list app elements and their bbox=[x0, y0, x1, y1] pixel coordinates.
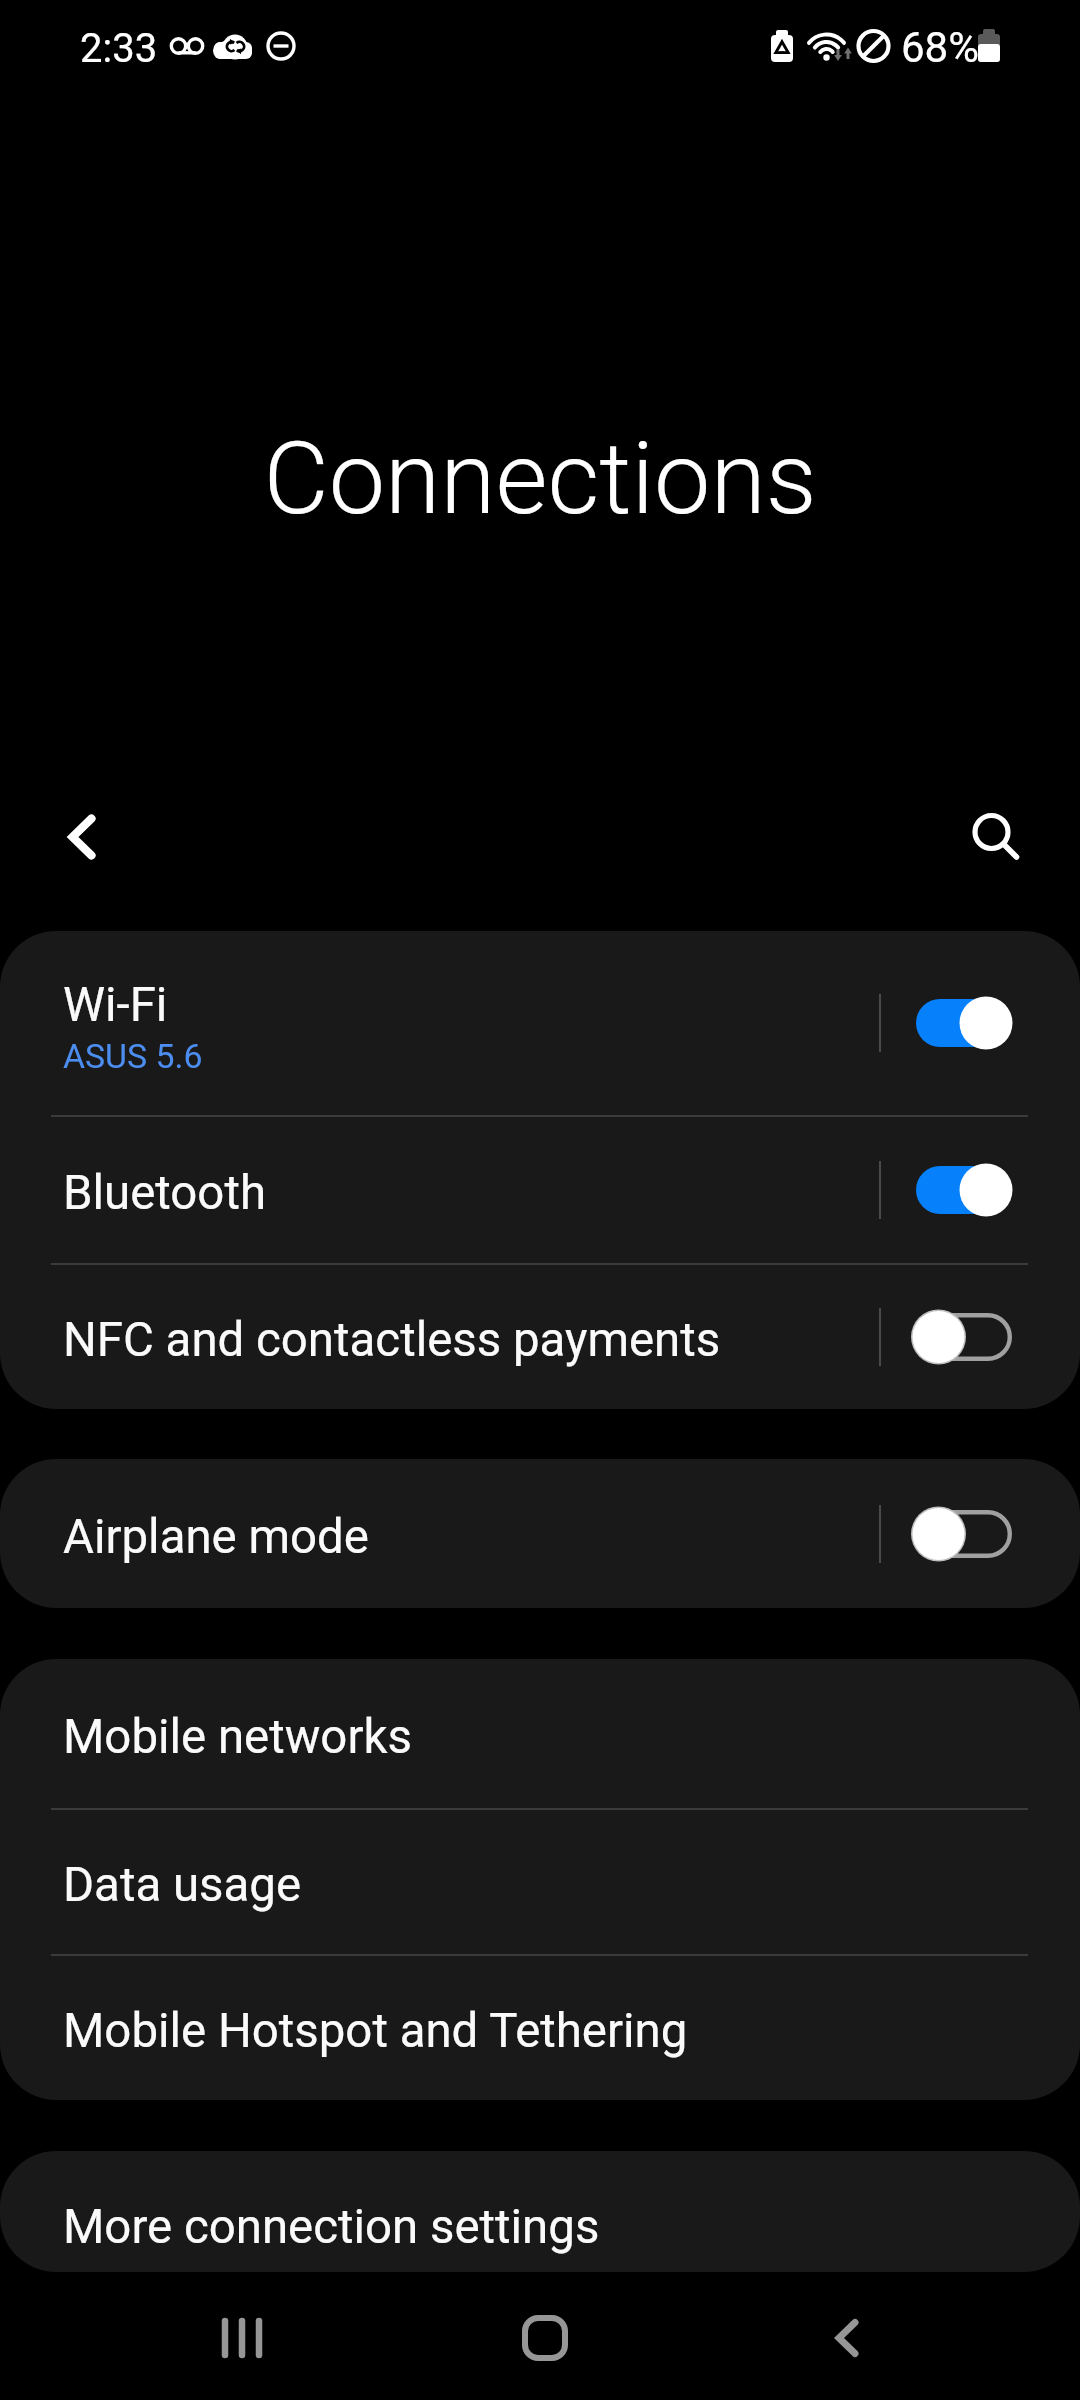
button[interactable]: Switch on bbox=[908, 931, 1020, 1115]
button[interactable]: Mobile Hotspot and Tethering bbox=[0, 1956, 1080, 2100]
staticText: Data usage bbox=[63, 1857, 302, 1913]
button[interactable]: Wi-Fi bbox=[0, 931, 1080, 1115]
staticText: Wi-Fi bbox=[63, 977, 168, 1033]
staticText: Mobile Hotspot and Tethering bbox=[63, 2003, 688, 2059]
button[interactable]: Navigate up bbox=[35, 790, 129, 884]
staticText: 2:33 bbox=[80, 25, 158, 72]
button[interactable]: Airplane mode bbox=[0, 1459, 1080, 1608]
button[interactable]: Mobile networks bbox=[0, 1659, 1080, 1808]
staticText: Connections bbox=[0, 420, 1080, 538]
button[interactable]: Search bbox=[946, 790, 1040, 884]
button[interactable]: More connection settings bbox=[0, 2151, 1080, 2272]
staticText: Mobile networks bbox=[63, 1709, 412, 1765]
staticText: More connection settings bbox=[63, 2199, 600, 2255]
staticText: ASUS 5.6 bbox=[63, 1037, 203, 1077]
button[interactable]: Back bbox=[787, 2278, 907, 2398]
button[interactable]: Bluetooth bbox=[0, 1117, 1080, 1263]
staticText: Bluetooth bbox=[63, 1165, 267, 1221]
button[interactable]: Switch off bbox=[908, 1459, 1020, 1608]
button[interactable]: Switch off bbox=[908, 1265, 1020, 1409]
button[interactable]: Recent apps bbox=[182, 2278, 302, 2398]
button[interactable]: Data usage bbox=[0, 1810, 1080, 1954]
staticText: NFC and contactless payments bbox=[63, 1312, 721, 1368]
staticText: Airplane mode bbox=[63, 1509, 369, 1565]
button[interactable]: Home bbox=[485, 2278, 605, 2398]
button[interactable]: NFC and contactless payments bbox=[0, 1265, 1080, 1409]
button[interactable]: Switch on bbox=[908, 1117, 1020, 1263]
staticText: 68% bbox=[901, 23, 979, 72]
